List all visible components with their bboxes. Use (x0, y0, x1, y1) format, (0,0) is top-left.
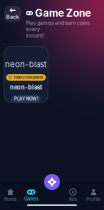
staticText: Games (24, 196, 38, 201)
button[interactable]: Games (21, 181, 42, 210)
staticText: Profile (86, 197, 101, 202)
button[interactable]: Back (4, 6, 21, 22)
staticText: PLAY NOW! (14, 96, 38, 101)
button[interactable]: Ads (62, 181, 83, 210)
staticText: Game Zone (35, 7, 91, 19)
staticText: neon-blast (5, 59, 47, 69)
staticText: neon-blast (10, 84, 42, 91)
button[interactable]: Profile (83, 181, 104, 210)
staticText: Ads (69, 197, 77, 202)
button[interactable]: Create (42, 172, 62, 192)
staticText: Home (4, 197, 17, 202)
staticText: Play games and earn coins every instant! (26, 20, 90, 39)
button[interactable]: Home (0, 181, 21, 210)
staticText: Back (6, 14, 19, 20)
button[interactable]: PLAY NOW! (11, 95, 41, 103)
staticText: 1000 COINS/WIN (13, 75, 43, 80)
